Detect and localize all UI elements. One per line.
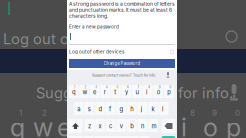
staticText: e	[93, 88, 96, 96]
staticText: 1	[74, 85, 75, 89]
staticText: t	[114, 88, 116, 96]
button[interactable]: k	[148, 102, 158, 115]
staticText: 3	[66, 108, 71, 118]
staticText: for info.	[178, 84, 233, 102]
button[interactable]: 1	[68, 85, 78, 98]
staticText: i	[181, 112, 187, 138]
button[interactable]: 5	[111, 85, 121, 98]
button[interactable]: c	[106, 119, 116, 132]
staticText: y	[125, 88, 128, 96]
button[interactable]: 4	[100, 85, 110, 98]
staticText: d	[98, 105, 102, 113]
staticText: 0	[235, 108, 240, 118]
staticText: g	[120, 105, 124, 113]
staticText: k	[151, 105, 154, 113]
staticText: 3	[95, 85, 97, 89]
staticText: 1	[19, 108, 22, 118]
staticText: z	[88, 122, 91, 130]
button[interactable]: 8	[143, 85, 153, 98]
staticText: 7	[138, 85, 140, 89]
button[interactable]: d	[95, 102, 105, 115]
staticText: q	[72, 88, 76, 96]
staticText: Sugges	[36, 84, 89, 102]
button[interactable]: g	[116, 102, 126, 115]
button[interactable]: Change Password	[69, 59, 175, 68]
button[interactable]: h	[127, 102, 137, 115]
staticText: f	[109, 105, 111, 113]
staticText: Suggest contact names? Touch for info.	[92, 73, 156, 77]
button[interactable]: b	[127, 119, 137, 132]
button[interactable]: x	[95, 119, 105, 132]
staticText: A strong password is a combination of le…	[69, 1, 175, 19]
staticText: s	[88, 105, 91, 113]
button[interactable]: Return	[161, 136, 175, 138]
staticText: a	[77, 105, 80, 113]
button[interactable]: Shift	[68, 119, 82, 133]
button[interactable]: 2	[79, 85, 89, 98]
staticText: c	[109, 122, 112, 130]
staticText: 8	[190, 108, 195, 118]
button[interactable]: s	[84, 102, 94, 115]
staticText: 5	[116, 85, 118, 89]
staticText: u	[135, 88, 138, 96]
button[interactable]: 0	[164, 85, 174, 98]
button[interactable]: n	[137, 119, 147, 132]
button[interactable]: a	[74, 102, 84, 115]
staticText: 9	[159, 85, 161, 89]
staticText: 8	[148, 85, 150, 89]
button[interactable]: 7	[132, 85, 142, 98]
button[interactable]: l	[159, 102, 168, 115]
staticText: r	[104, 88, 106, 96]
staticText: Change Password	[103, 61, 140, 66]
staticText: n	[141, 122, 144, 130]
staticText: 9	[212, 108, 217, 118]
button[interactable]: j	[137, 102, 147, 115]
staticText: v	[120, 122, 123, 130]
staticText: i	[146, 88, 147, 96]
staticText: 4	[106, 85, 108, 89]
staticText: Log out of other devices	[69, 49, 124, 54]
staticText: e	[57, 112, 71, 138]
staticText: q	[10, 112, 25, 138]
button[interactable]: m	[148, 119, 158, 132]
staticText: o	[203, 112, 218, 138]
staticText: o	[157, 88, 161, 96]
staticText: 2	[42, 108, 47, 118]
staticText: b	[130, 122, 134, 130]
staticText: w	[82, 88, 87, 96]
button[interactable]: 9	[153, 85, 163, 98]
staticText: p	[167, 88, 171, 96]
staticText: 6	[127, 85, 129, 89]
button[interactable]: Suggest contact names? Touch for info.	[67, 70, 177, 80]
staticText: w	[33, 112, 53, 138]
button[interactable]: 3	[90, 85, 100, 98]
button[interactable]: 6	[121, 85, 131, 98]
button[interactable]: Backspace	[161, 119, 175, 133]
staticText: p	[226, 112, 241, 138]
staticText: h	[130, 105, 133, 113]
button[interactable]: f	[106, 102, 115, 115]
button[interactable]: v	[116, 119, 126, 132]
staticText: m	[151, 122, 156, 130]
staticText: j	[141, 105, 142, 113]
staticText: 2	[85, 85, 87, 89]
button[interactable]: z	[84, 119, 94, 132]
staticText: x	[98, 122, 101, 130]
staticText: Log out of oth	[3, 30, 101, 48]
button[interactable]: Log out of other devices	[67, 48, 177, 57]
staticText: 0	[169, 85, 171, 89]
staticText: Enter a new password	[69, 24, 119, 29]
staticText: l	[162, 105, 163, 113]
